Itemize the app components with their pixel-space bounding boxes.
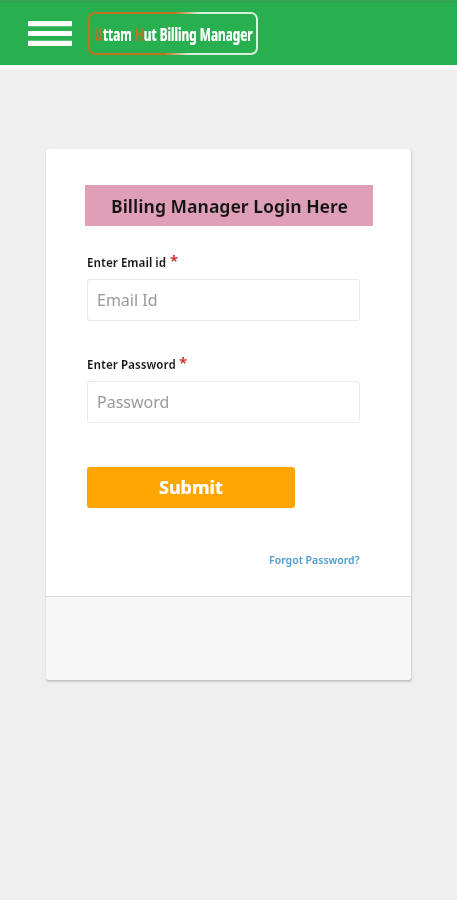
button[interactable]: Forgot Password? xyxy=(265,551,360,569)
staticText: * xyxy=(179,352,188,366)
button[interactable]: Open navigation menu xyxy=(23,13,77,53)
staticText: Enter Email id xyxy=(87,255,167,269)
button[interactable]: Uttam Hut Billing Manager xyxy=(88,12,258,55)
staticText: Email Id xyxy=(97,289,158,311)
staticText: * xyxy=(170,250,179,264)
staticText: Forgot Password? xyxy=(269,553,360,567)
button[interactable]: Submit xyxy=(87,467,295,508)
staticText: Password xyxy=(97,391,170,413)
staticText: Uttam Hut Billing Manager xyxy=(94,21,253,45)
button[interactable]: Password xyxy=(87,381,360,423)
staticText: Billing Manager Login Here xyxy=(111,194,348,218)
button[interactable]: Email Id xyxy=(87,279,360,321)
staticText: Submit xyxy=(159,475,223,500)
button[interactable]: Billing Manager Login Here xyxy=(85,185,373,226)
staticText: Enter Password xyxy=(87,357,176,371)
